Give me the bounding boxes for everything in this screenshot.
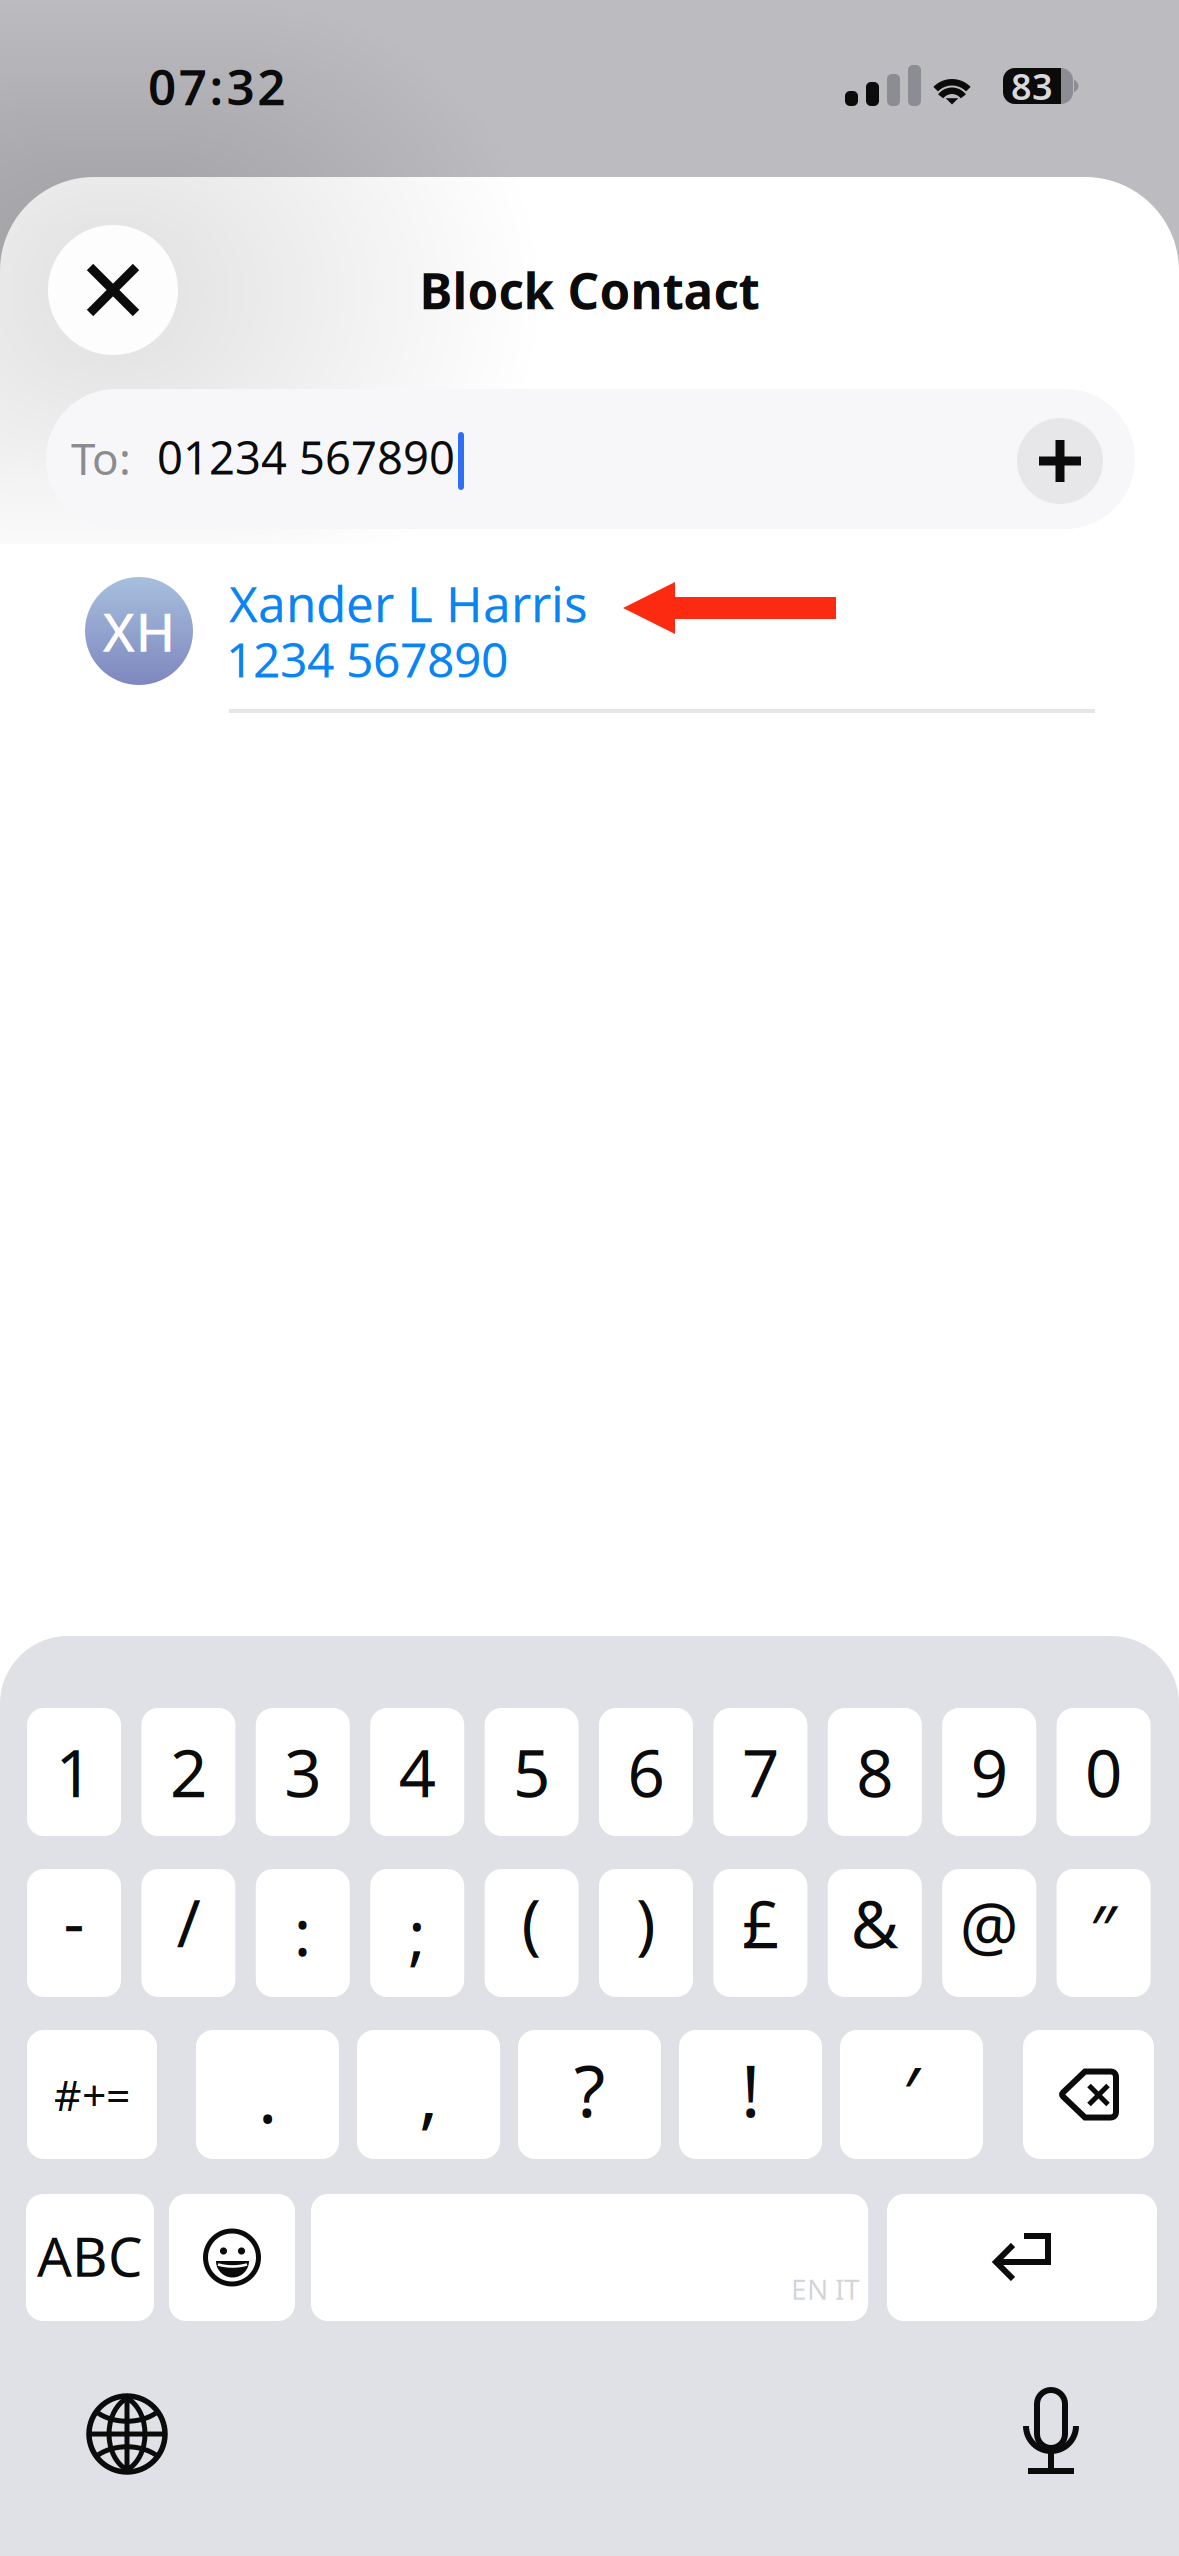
staticText: 6	[627, 1729, 664, 1815]
staticText: 8	[856, 1729, 893, 1815]
button[interactable]: -	[27, 1869, 121, 1997]
staticText: .	[258, 2048, 277, 2143]
staticText: #+=	[54, 2066, 130, 2123]
staticText: Xander L Harris	[229, 570, 588, 636]
staticText: 01234 567890	[157, 427, 455, 487]
staticText: 0	[1085, 1729, 1122, 1815]
staticText: To:	[71, 429, 131, 487]
staticText: 83	[1011, 62, 1053, 110]
staticText: EN IT	[791, 2270, 860, 2308]
button[interactable]: &	[828, 1869, 922, 1997]
staticText: )	[636, 1879, 656, 1965]
staticText: ″	[1090, 1885, 1117, 1971]
staticText: 4	[399, 1729, 436, 1815]
button[interactable]: Next keyboard	[89, 2396, 165, 2472]
button[interactable]: 4	[370, 1708, 464, 1836]
button[interactable]: ;	[370, 1869, 464, 1997]
button[interactable]: 2	[141, 1708, 235, 1836]
staticText: ′	[903, 2044, 920, 2139]
button[interactable]: 9	[942, 1708, 1036, 1836]
button[interactable]: Return	[887, 2194, 1157, 2321]
staticText: !	[741, 2042, 760, 2137]
staticText: ?	[574, 2042, 605, 2137]
button[interactable]: Add contact	[1017, 418, 1103, 504]
button[interactable]: #+=	[27, 2030, 157, 2159]
button[interactable]: XH	[0, 544, 1179, 714]
staticText: 7	[742, 1729, 779, 1815]
button[interactable]: 0	[1057, 1708, 1151, 1836]
button[interactable]: !	[679, 2030, 822, 2159]
button[interactable]: @	[942, 1869, 1036, 1997]
staticText: /	[176, 1879, 200, 1965]
button[interactable]: ?	[518, 2030, 661, 2159]
button[interactable]: ′	[840, 2030, 983, 2159]
staticText: 5	[513, 1729, 550, 1815]
staticText: ABC	[37, 2219, 143, 2292]
staticText: 3	[284, 1729, 321, 1815]
button[interactable]: Close	[48, 225, 178, 355]
staticText: 07:32	[148, 53, 285, 119]
button[interactable]: /	[141, 1869, 235, 1997]
staticText: 1	[55, 1729, 92, 1815]
button[interactable]: .	[196, 2030, 339, 2159]
button[interactable]: space	[311, 2194, 868, 2321]
button[interactable]: (	[485, 1869, 579, 1997]
staticText: &	[851, 1880, 899, 1966]
button[interactable]: )	[599, 1869, 693, 1997]
button[interactable]: Dictate	[1023, 2390, 1079, 2474]
button[interactable]: :	[256, 1869, 350, 1997]
button[interactable]: Emoji	[169, 2194, 295, 2321]
button[interactable]: 5	[485, 1708, 579, 1836]
button[interactable]: ″	[1057, 1869, 1151, 1997]
staticText: (	[522, 1879, 542, 1965]
button[interactable]: 8	[828, 1708, 922, 1836]
staticText: ,	[419, 2046, 438, 2141]
staticText: 2	[170, 1729, 207, 1815]
staticText: XH	[102, 596, 175, 666]
staticText: -	[63, 1878, 84, 1964]
button[interactable]: 1	[27, 1708, 121, 1836]
staticText: :	[294, 1888, 312, 1974]
button[interactable]: £	[713, 1869, 807, 1997]
button[interactable]: ,	[357, 2030, 500, 2159]
button[interactable]: 7	[713, 1708, 807, 1836]
staticText: £	[742, 1880, 779, 1966]
staticText: 1234 567890	[226, 627, 508, 691]
staticText: 9	[971, 1729, 1008, 1815]
button[interactable]: 3	[256, 1708, 350, 1836]
staticText: Block Contact	[419, 257, 759, 323]
staticText: @	[960, 1882, 1019, 1968]
button[interactable]: 6	[599, 1708, 693, 1836]
button[interactable]: Delete	[1023, 2030, 1154, 2159]
staticText: ;	[408, 1890, 426, 1976]
button[interactable]: ABC	[26, 2194, 154, 2321]
